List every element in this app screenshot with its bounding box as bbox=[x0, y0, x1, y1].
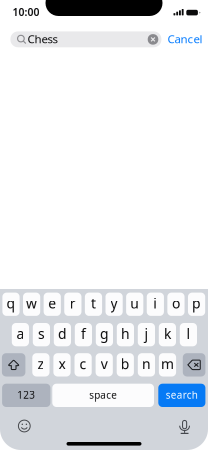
button[interactable]: space bbox=[52, 384, 154, 407]
button[interactable]: c bbox=[74, 353, 92, 376]
button[interactable]: Shift bbox=[2, 353, 25, 376]
staticText: s bbox=[38, 324, 45, 343]
button[interactable]: m bbox=[159, 353, 176, 376]
button[interactable]: Clear text bbox=[143, 29, 163, 49]
staticText: v bbox=[101, 354, 108, 373]
staticText: search bbox=[166, 388, 198, 401]
staticText: d bbox=[58, 324, 67, 343]
staticText: b bbox=[121, 354, 130, 373]
staticText: o bbox=[172, 294, 180, 313]
button[interactable]: l bbox=[180, 323, 197, 346]
staticText: g bbox=[100, 324, 109, 343]
staticText: i bbox=[153, 294, 157, 313]
staticText: q bbox=[6, 294, 15, 313]
staticText: w bbox=[26, 294, 37, 313]
button[interactable]: w bbox=[23, 293, 40, 316]
button[interactable]: Dictation bbox=[173, 415, 197, 439]
button[interactable]: Cancel bbox=[168, 31, 208, 47]
button[interactable]: u bbox=[126, 293, 143, 316]
button[interactable]: k bbox=[159, 323, 176, 346]
staticText: t bbox=[91, 294, 96, 313]
button[interactable]: a bbox=[12, 323, 29, 346]
button[interactable]: Delete bbox=[183, 353, 205, 376]
button[interactable]: p bbox=[188, 293, 205, 316]
button[interactable]: o bbox=[167, 293, 185, 316]
staticText: space bbox=[89, 388, 117, 401]
button[interactable]: x bbox=[53, 353, 71, 376]
button[interactable]: 123 bbox=[2, 384, 50, 407]
button[interactable]: t bbox=[85, 293, 102, 316]
staticText: p bbox=[192, 294, 201, 313]
button[interactable]: search bbox=[158, 384, 205, 407]
staticText: c bbox=[80, 354, 87, 373]
staticText: a bbox=[16, 324, 24, 343]
staticText: h bbox=[121, 324, 130, 343]
button[interactable]: e bbox=[44, 293, 61, 316]
staticText: r bbox=[70, 294, 76, 313]
button[interactable]: q bbox=[2, 293, 20, 316]
staticText: Cancel bbox=[168, 31, 203, 46]
button[interactable]: r bbox=[64, 293, 81, 316]
button[interactable]: s bbox=[33, 323, 50, 346]
staticText: l bbox=[186, 324, 190, 343]
staticText: x bbox=[58, 354, 65, 373]
button[interactable]: g bbox=[96, 323, 113, 346]
staticText: z bbox=[37, 354, 44, 373]
button[interactable]: j bbox=[138, 323, 155, 346]
staticText: f bbox=[81, 324, 86, 343]
button[interactable]: n bbox=[138, 353, 155, 376]
staticText: Chess bbox=[28, 31, 58, 47]
staticText: m bbox=[161, 354, 174, 373]
staticText: j bbox=[144, 324, 148, 343]
button[interactable]: Emoji keyboard bbox=[12, 414, 36, 438]
staticText: k bbox=[164, 324, 171, 343]
button[interactable]: b bbox=[117, 353, 134, 376]
button[interactable]: f bbox=[75, 323, 92, 346]
button[interactable]: i bbox=[147, 293, 164, 316]
staticText: y bbox=[111, 294, 118, 313]
button[interactable]: h bbox=[117, 323, 134, 346]
button[interactable]: d bbox=[54, 323, 71, 346]
button[interactable]: z bbox=[32, 353, 49, 376]
staticText: 10:00 bbox=[12, 5, 39, 19]
staticText: 123 bbox=[17, 388, 35, 401]
staticText: e bbox=[48, 294, 56, 313]
button[interactable]: v bbox=[96, 353, 113, 376]
staticText: u bbox=[130, 294, 139, 313]
button[interactable]: y bbox=[105, 293, 123, 316]
staticText: n bbox=[142, 354, 151, 373]
